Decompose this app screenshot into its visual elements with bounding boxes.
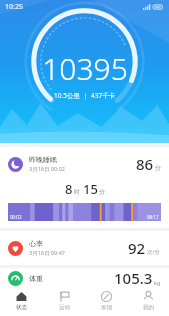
button[interactable]: 发现 — [85, 286, 127, 316]
staticText: 10395 — [42, 48, 128, 89]
staticText: 00:02 — [10, 214, 22, 220]
staticText: 92 — [128, 238, 146, 258]
button[interactable]: 状态 — [0, 286, 43, 316]
staticText: | — [80, 91, 91, 100]
staticText: 分 — [155, 164, 161, 172]
button[interactable]: 昨晚睡眠 — [0, 147, 169, 228]
staticText: 3月16日 09:47 — [29, 249, 65, 257]
staticText: 次/分 — [147, 248, 161, 256]
staticText: 08:17 — [147, 214, 159, 220]
staticText: 8 — [65, 180, 73, 198]
staticText: 我的 — [143, 304, 154, 311]
staticText: 时 — [74, 188, 80, 196]
staticText: 86 — [136, 154, 154, 174]
staticText: 运动 — [59, 304, 70, 311]
button[interactable]: 心率 — [0, 231, 169, 265]
staticText: 心率 — [29, 239, 43, 248]
button[interactable]: 体重 — [0, 268, 169, 288]
staticText: 昨晚睡眠 — [29, 155, 57, 164]
staticText: 10:25 — [5, 2, 23, 12]
button[interactable]: 我的 — [127, 286, 169, 316]
button[interactable]: 运动 — [43, 286, 85, 316]
staticText: kg — [154, 279, 161, 286]
staticText: 分 — [99, 188, 105, 196]
staticText: 状态 — [16, 304, 27, 311]
staticText: 15 — [83, 180, 98, 198]
staticText: 发现 — [101, 304, 112, 311]
staticText: 3月16日 00:02 — [29, 165, 65, 173]
staticText: 体重 — [29, 274, 114, 283]
staticText: 105.3 — [114, 268, 153, 288]
staticText: 10.5公里 — [54, 91, 80, 100]
staticText: 437千卡 — [91, 91, 116, 100]
